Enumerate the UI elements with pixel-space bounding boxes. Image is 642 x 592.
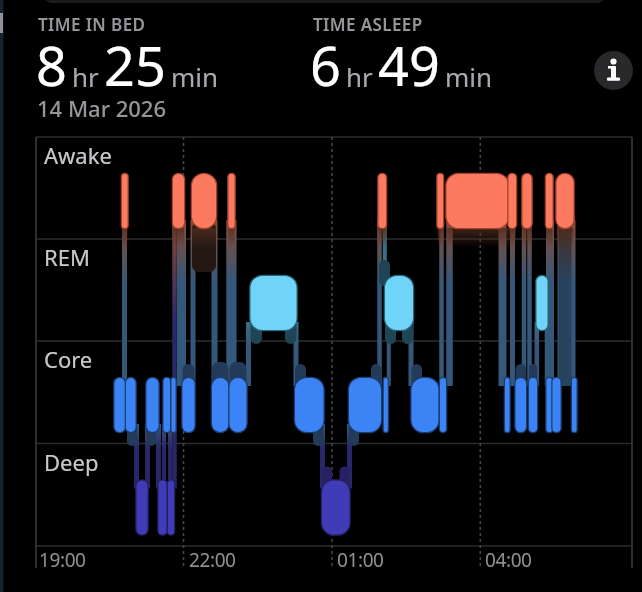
staticText: 6 <box>310 28 341 102</box>
staticText: 49 <box>378 28 440 102</box>
staticText: 14 Mar 2026 <box>37 93 167 123</box>
staticText: hr <box>346 59 373 94</box>
staticText: 01:00 <box>337 547 384 573</box>
staticText: min <box>445 59 493 94</box>
staticText: 04:00 <box>485 547 532 573</box>
button[interactable] <box>594 51 633 90</box>
staticText: Deep <box>44 447 99 477</box>
staticText: TIME IN BED <box>38 13 146 36</box>
staticText: Core <box>44 344 93 374</box>
staticText: min <box>171 59 219 94</box>
staticText: 19:00 <box>39 547 86 573</box>
staticText: Awake <box>44 140 112 170</box>
staticText: 8 <box>36 28 67 102</box>
staticText: 25 <box>104 28 166 102</box>
staticText: hr <box>72 59 99 94</box>
staticText: TIME ASLEEP <box>313 13 423 36</box>
staticText: REM <box>44 242 90 272</box>
staticText: 22:00 <box>189 547 236 573</box>
